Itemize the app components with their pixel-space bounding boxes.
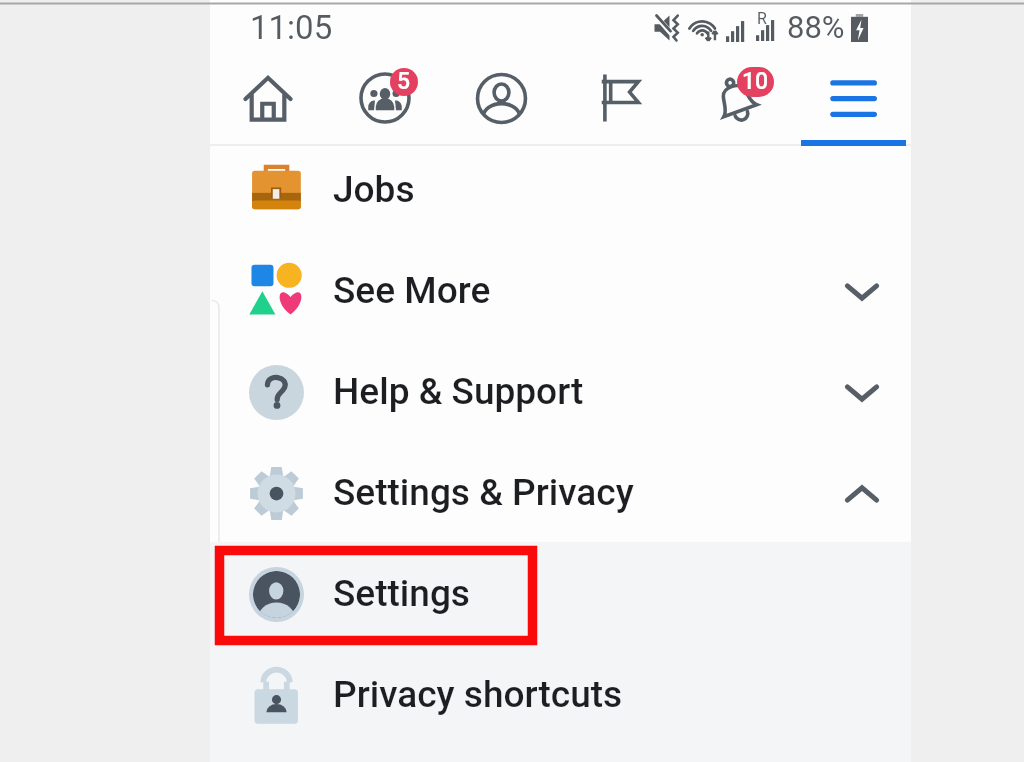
staticText: 88% (787, 9, 845, 45)
button[interactable]: Notifications (677, 56, 794, 140)
button[interactable]: See More (210, 241, 911, 342)
button[interactable]: Privacy shortcuts (210, 645, 911, 746)
button[interactable]: Menu (794, 56, 911, 140)
staticText: Settings (333, 572, 470, 615)
button[interactable]: Pages (560, 56, 677, 140)
button[interactable]: Groups (326, 56, 443, 140)
staticText: Help & Support (333, 370, 584, 413)
button[interactable]: Help & Support (210, 342, 911, 443)
staticText: Settings & Privacy (333, 471, 634, 514)
staticText: 5 (397, 68, 411, 95)
staticText: R (757, 9, 767, 28)
button[interactable]: Jobs (210, 140, 911, 241)
button[interactable]: Settings (210, 544, 911, 645)
staticText: 11:05 (250, 8, 333, 47)
staticText: 10 (742, 68, 769, 95)
button[interactable]: Settings & Privacy (210, 443, 911, 544)
staticText: See More (333, 269, 491, 312)
button[interactable]: Home (210, 56, 326, 140)
staticText: Privacy shortcuts (333, 673, 623, 716)
button[interactable]: Profile (443, 56, 560, 140)
staticText: Jobs (333, 168, 415, 211)
